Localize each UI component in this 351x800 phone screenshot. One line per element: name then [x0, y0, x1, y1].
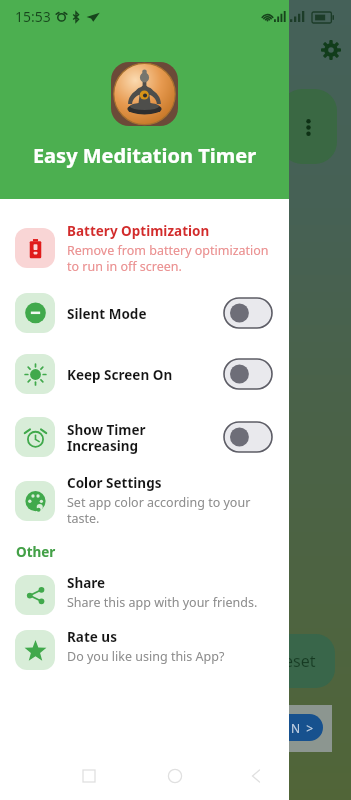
staticText: 15:53: [15, 7, 51, 26]
staticText: Other: [16, 543, 56, 561]
button[interactable]: Recents: [74, 761, 104, 791]
button[interactable]: Toggle Show Timer Increasing: [224, 422, 272, 452]
staticText: Do you like using this App?: [67, 648, 277, 665]
button[interactable]: Settings: [321, 40, 341, 60]
staticText: N >: [291, 720, 314, 736]
staticText: Battery Optimization: [67, 222, 210, 240]
button[interactable]: Toggle Silent Mode: [224, 298, 272, 328]
staticText: Set app color according to your taste.: [67, 494, 277, 527]
staticText: Share: [67, 574, 106, 592]
staticText: Show Timer Increasing: [67, 421, 146, 455]
button[interactable]: Home: [160, 761, 190, 791]
button[interactable]: Rate us: [0, 623, 289, 679]
button[interactable]: Battery Optimization: [0, 221, 289, 277]
button[interactable]: Keep Screen On: [0, 347, 289, 403]
staticText: Reset: [274, 650, 316, 672]
staticText: Silent Mode: [67, 305, 147, 323]
staticText: Remove from battery optimization to run …: [67, 242, 277, 275]
staticText: Easy Meditation Timer: [0, 142, 289, 169]
button[interactable]: Toggle Keep Screen On: [224, 359, 272, 389]
staticText: Color Settings: [67, 474, 162, 492]
staticText: Share this app with your friends.: [67, 594, 277, 611]
button[interactable]: Share: [0, 568, 289, 624]
button[interactable]: Back: [241, 761, 271, 791]
staticText: Rate us: [67, 628, 117, 646]
staticText: Keep Screen On: [67, 366, 173, 384]
button[interactable]: Silent Mode: [0, 286, 289, 342]
button[interactable]: Show Timer Increasing: [0, 410, 289, 466]
button[interactable]: Color Settings: [0, 474, 289, 530]
